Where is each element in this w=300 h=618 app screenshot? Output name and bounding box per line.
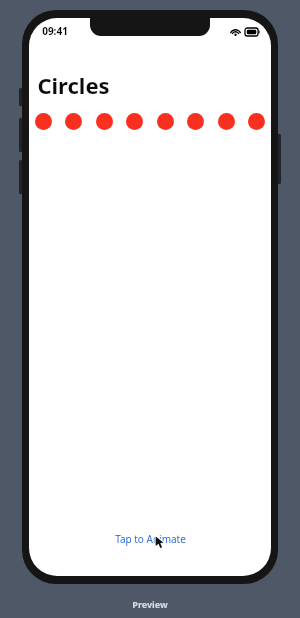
other: Battery <box>245 28 260 36</box>
staticText: 09:41 <box>42 24 68 38</box>
other: Wi-Fi <box>230 27 241 36</box>
staticText: Circles <box>37 70 110 100</box>
staticText: Preview <box>132 598 168 610</box>
button[interactable]: Tap to Animate <box>29 524 271 554</box>
staticText: Tap to Animate <box>115 532 186 546</box>
